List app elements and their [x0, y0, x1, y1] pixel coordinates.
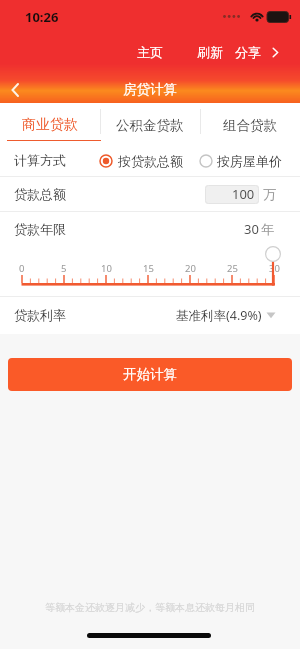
staticText: 计算方式	[14, 152, 66, 168]
staticText: 10:26	[25, 8, 59, 26]
staticText: 基准利率(4.9%)	[176, 307, 262, 324]
staticText: 25	[227, 262, 238, 275]
staticText: 组合贷款	[223, 117, 277, 134]
staticText: 按贷款总额	[118, 153, 183, 169]
staticText: 按房屋单价	[217, 153, 282, 169]
staticText: 刷新	[197, 44, 223, 60]
staticText: 等额本金还款逐月减少，等额本息还款每月相同	[45, 601, 255, 614]
staticText: 主页	[137, 44, 163, 60]
staticText: 公积金贷款	[116, 117, 184, 134]
staticText: 30	[244, 220, 259, 238]
staticText: 年	[261, 221, 274, 237]
staticText: 分享	[235, 44, 261, 60]
staticText: 贷款总额	[14, 186, 66, 202]
staticText: 贷款年限	[14, 221, 66, 237]
staticText: 30	[269, 262, 280, 275]
staticText: 10	[101, 262, 112, 275]
staticText: 100	[232, 185, 255, 203]
staticText: 15	[143, 262, 154, 275]
staticText: 0	[19, 262, 25, 275]
staticText: 开始计算	[123, 366, 177, 383]
staticText: 5	[61, 262, 67, 275]
staticText: 商业贷款	[22, 116, 78, 134]
staticText: 20	[185, 262, 196, 275]
staticText: 贷款利率	[14, 307, 66, 323]
staticText: 房贷计算	[123, 81, 177, 98]
staticText: 万	[263, 186, 276, 202]
